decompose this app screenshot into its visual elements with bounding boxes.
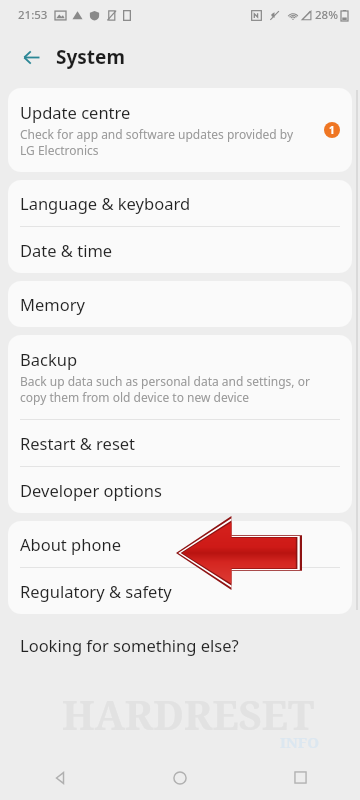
button[interactable]: About phone	[8, 521, 352, 567]
button[interactable]: Developer options	[8, 467, 352, 513]
staticText: Looking for something else?	[20, 634, 239, 656]
staticText: Language & keyboard	[20, 192, 191, 214]
button[interactable]: Restart & reset	[8, 420, 352, 466]
staticText: Developer options	[20, 479, 162, 501]
button[interactable]: Memory	[8, 281, 352, 327]
button[interactable]: Date & time	[8, 227, 352, 273]
staticText: Restart & reset	[20, 432, 136, 454]
button[interactable]: Home	[120, 755, 240, 800]
button[interactable]: Recent apps	[240, 755, 360, 800]
staticText: HARDRESET	[8, 687, 360, 741]
button[interactable]: Language & keyboard	[8, 180, 352, 226]
staticText: 21:53	[18, 7, 48, 23]
button[interactable]: Looking for something else?	[8, 632, 352, 656]
staticText: INFO	[280, 732, 319, 752]
staticText: Backup	[20, 348, 78, 370]
button[interactable]: Backup	[8, 335, 352, 419]
staticText: Update centre	[20, 101, 131, 123]
button[interactable]: Back	[0, 755, 120, 800]
staticText: System	[56, 44, 125, 70]
staticText: 28%	[315, 7, 338, 23]
staticText: Check for app and software updates provi…	[20, 126, 300, 158]
button[interactable]: Update centre	[8, 88, 352, 172]
staticText: Memory	[20, 293, 85, 315]
staticText: Back up data such as personal data and s…	[20, 373, 338, 405]
button[interactable]: Regulatory & safety	[8, 568, 352, 614]
staticText: 1	[329, 123, 335, 137]
staticText: Date & time	[20, 239, 113, 261]
button[interactable]: Back	[14, 40, 48, 74]
staticText: Regulatory & safety	[20, 580, 172, 602]
staticText: About phone	[20, 533, 121, 555]
